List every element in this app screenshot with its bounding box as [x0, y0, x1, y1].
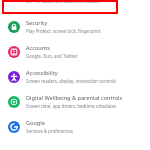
- button[interactable]: Location: [0, 0, 150, 14]
- button[interactable]: Security: [0, 14, 150, 39]
- button[interactable]: Google: [0, 114, 150, 139]
- staticText: Screen readers, display, interaction con…: [26, 78, 116, 84]
- staticText: Security: [26, 19, 47, 27]
- staticText: Accessibility: [26, 69, 58, 77]
- staticText: Play Protect, screen lock, fingerprint: [26, 28, 101, 34]
- staticText: Digital Wellbeing & parental controls: [26, 94, 123, 102]
- staticText: Google, Duo, and Twitter: [26, 53, 78, 59]
- staticText: On - 37 apps have access to location: [26, 0, 101, 3]
- button[interactable]: Accounts: [0, 39, 150, 64]
- staticText: Services & preferences: [26, 128, 73, 134]
- button[interactable]: Digital Wellbeing & parental controls: [0, 89, 150, 114]
- button[interactable]: Accessibility: [0, 64, 150, 89]
- staticText: Accounts: [26, 44, 50, 52]
- staticText: Google: [26, 119, 45, 127]
- staticText: Screen time, app timers, bedtime schedul…: [26, 103, 117, 109]
